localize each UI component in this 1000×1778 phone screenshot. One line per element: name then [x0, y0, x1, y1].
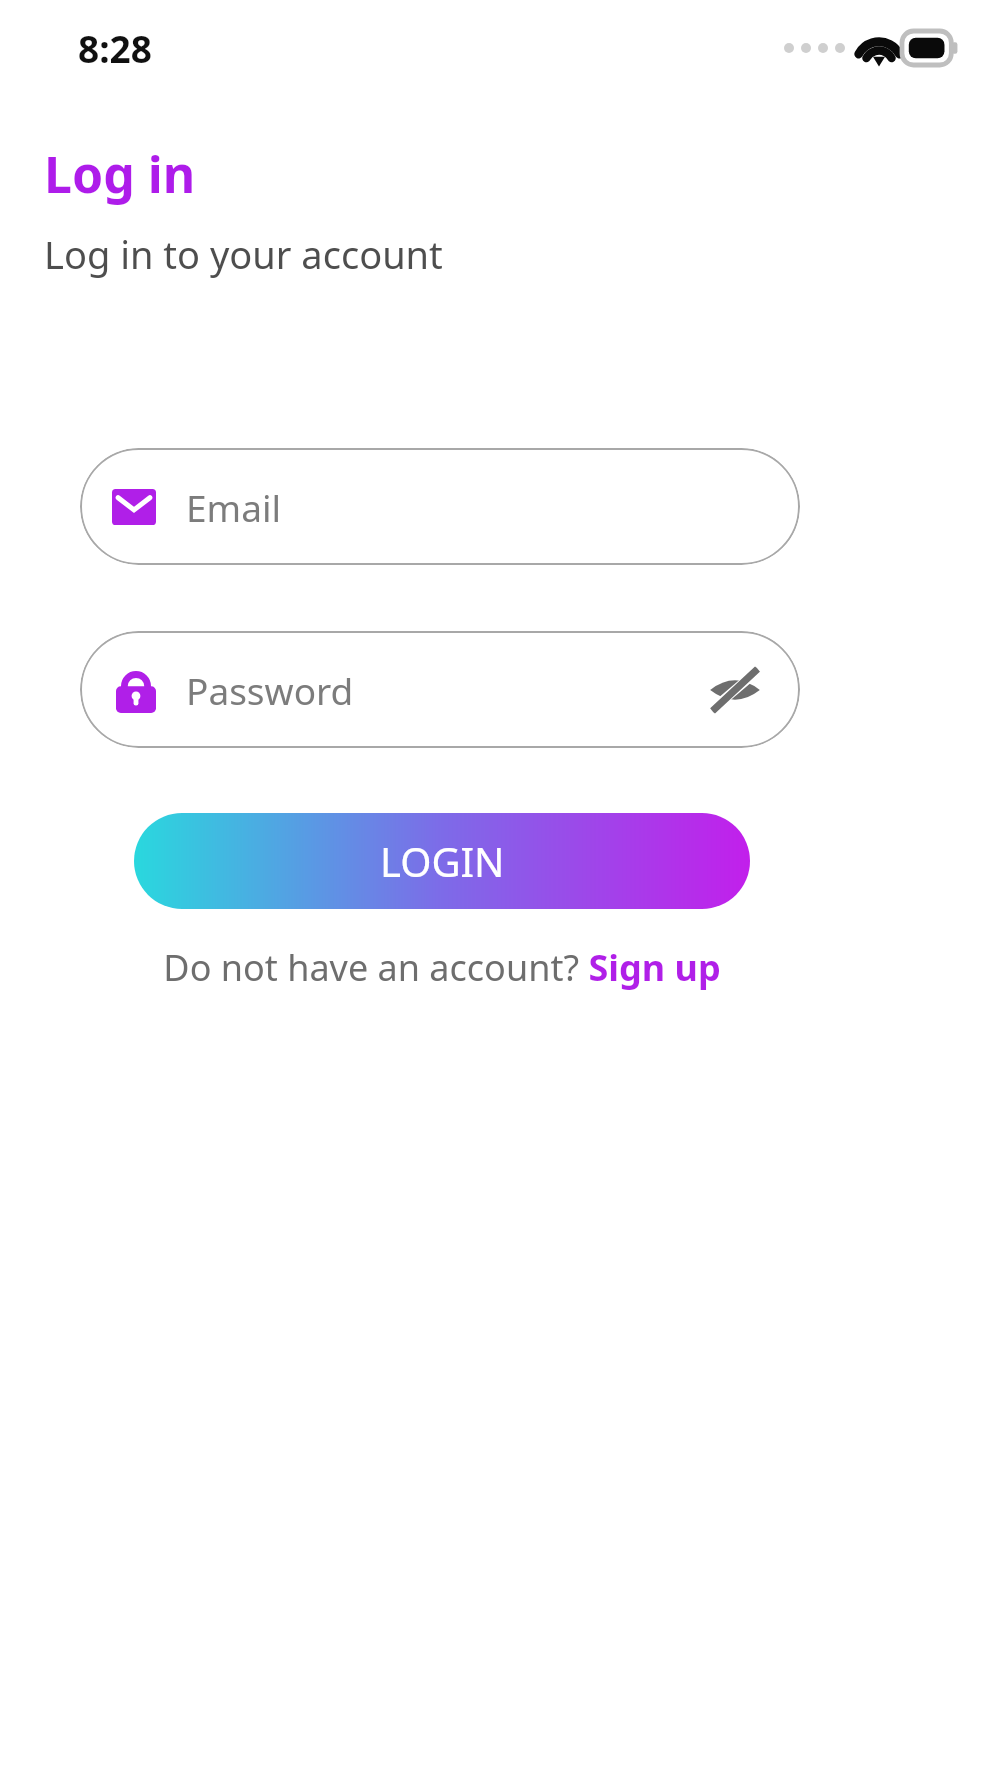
button[interactable]: Email: [80, 448, 800, 565]
button[interactable]: Show password: [704, 659, 766, 721]
button[interactable]: Password: [80, 631, 800, 748]
staticText: Do not have an account? Sign up: [163, 943, 721, 992]
button[interactable]: Do not have an account? Sign up: [157, 939, 727, 996]
staticText: Password: [186, 665, 354, 715]
staticText: Log in: [44, 140, 196, 208]
staticText: 8:28: [78, 23, 152, 73]
staticText: Email: [186, 482, 282, 532]
button[interactable]: LOGIN: [134, 813, 750, 909]
staticText: LOGIN: [380, 834, 505, 888]
staticText: Log in to your account: [44, 228, 443, 280]
